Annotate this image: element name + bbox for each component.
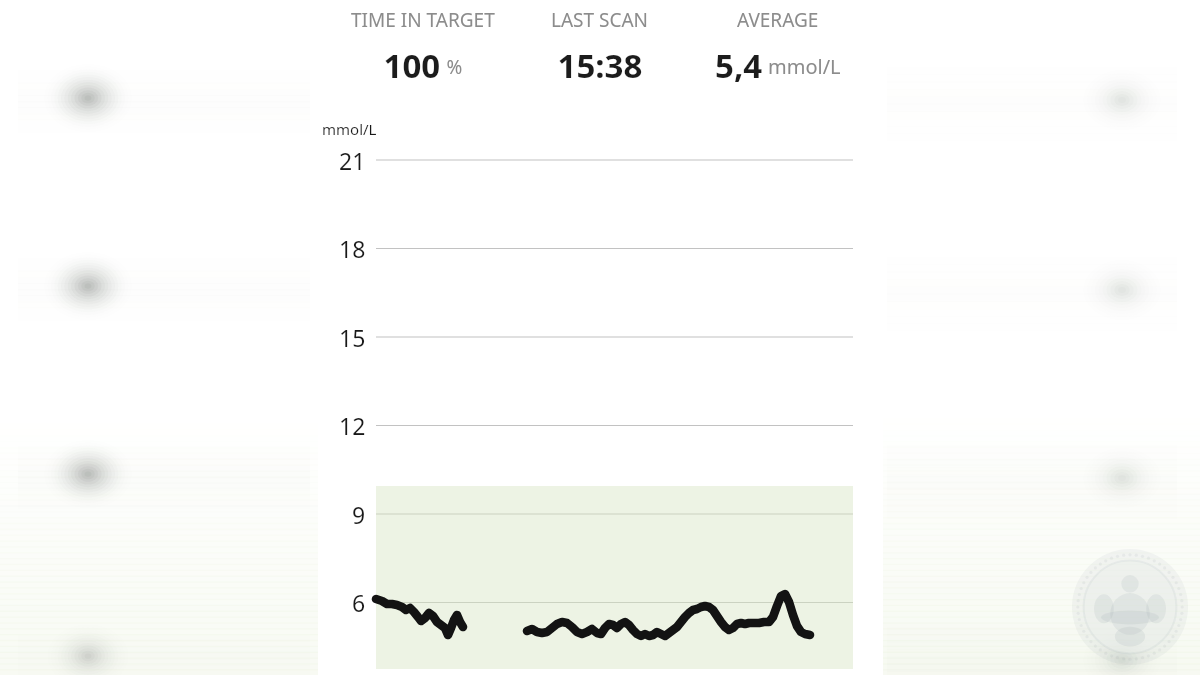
button[interactable]: Glucose daily graph report xyxy=(0,0,1200,675)
